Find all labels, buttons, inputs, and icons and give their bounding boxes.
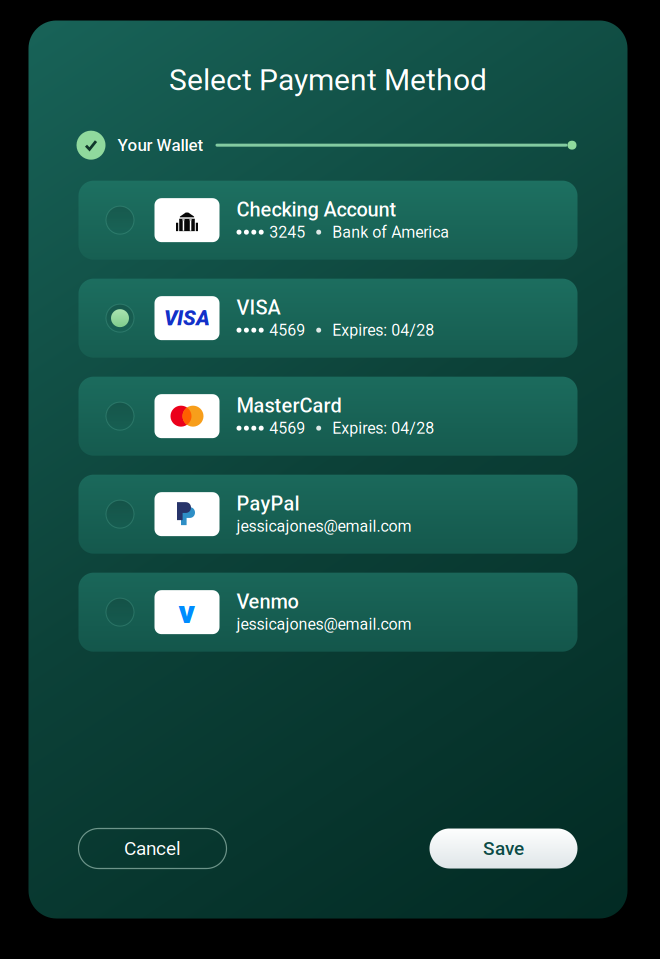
button[interactable]: VISA <box>78 279 577 358</box>
staticText: Bank of America <box>332 223 449 242</box>
staticText: 4569 <box>269 419 305 438</box>
staticText: Checking Account <box>236 198 396 221</box>
button[interactable]: MasterCard <box>78 377 577 456</box>
staticText: Expires: 04/28 <box>332 321 434 340</box>
staticText: 4569 <box>269 321 305 340</box>
staticText: Your Wallet <box>117 135 203 155</box>
staticText: v <box>178 593 195 631</box>
button[interactable]: Save <box>429 828 577 868</box>
staticText: VISA <box>236 296 280 319</box>
staticText: Expires: 04/28 <box>332 419 434 438</box>
button[interactable]: Cancel <box>78 828 226 868</box>
staticText: jessicajones@email.com <box>236 615 411 634</box>
staticText: Cancel <box>124 837 181 860</box>
staticText: Save <box>483 837 524 860</box>
staticText: PayPal <box>236 492 299 515</box>
staticText: Venmo <box>236 590 298 613</box>
staticText: jessicajones@email.com <box>236 517 411 536</box>
staticText: VISA <box>164 306 210 330</box>
staticText: MasterCard <box>236 394 341 417</box>
button[interactable]: Checking Account <box>78 181 577 260</box>
button[interactable]: v <box>78 573 577 652</box>
staticText: 3245 <box>269 223 305 242</box>
button[interactable]: PayPal <box>78 475 577 554</box>
staticText: Select Payment Method <box>169 62 487 98</box>
